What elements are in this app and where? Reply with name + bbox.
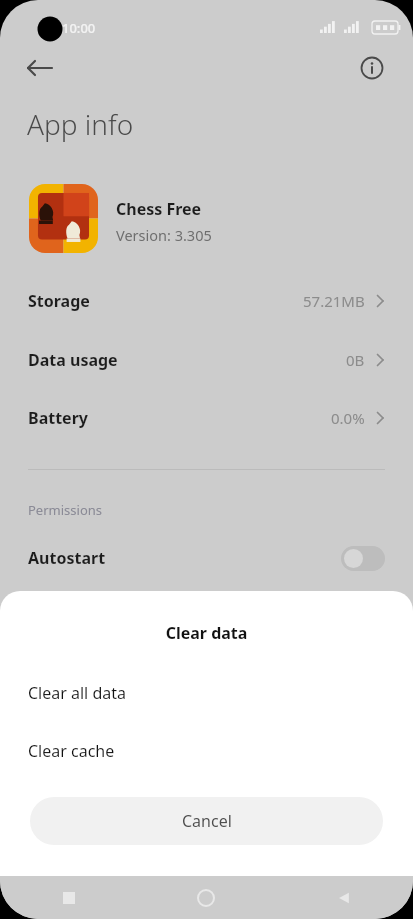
staticText: App info — [27, 105, 134, 143]
staticText: 57.21MB — [303, 291, 365, 311]
staticText: Clear cache — [28, 740, 115, 762]
button[interactable]: Autostart — [0, 535, 413, 581]
button[interactable]: Storage — [0, 278, 413, 324]
staticText: 0.0% — [331, 408, 365, 428]
button[interactable]: Cancel — [30, 797, 383, 845]
button[interactable]: Home — [137, 876, 275, 919]
staticText: Permissions — [28, 501, 103, 519]
button[interactable]: Back — [275, 876, 413, 919]
staticText: Clear data — [0, 622, 413, 644]
staticText: Storage — [28, 290, 90, 312]
staticText: Data usage — [28, 349, 118, 371]
staticText: Version: 3.305 — [116, 225, 212, 245]
staticText: Autostart — [28, 547, 106, 569]
staticText: Clear all data — [28, 682, 126, 704]
button[interactable]: Battery — [0, 395, 413, 441]
button[interactable]: App details — [352, 48, 392, 88]
button[interactable]: Clear cache — [0, 727, 413, 775]
staticText: Chess Free — [116, 198, 202, 220]
staticText: 10:00 — [62, 19, 96, 37]
button[interactable]: Clear all data — [0, 669, 413, 717]
staticText: 0B — [346, 350, 365, 370]
button[interactable]: Back — [20, 48, 60, 88]
staticText: Cancel — [182, 810, 232, 832]
button[interactable]: Recent apps — [0, 876, 137, 919]
staticText: Battery — [28, 407, 88, 429]
button[interactable]: Data usage — [0, 337, 413, 383]
